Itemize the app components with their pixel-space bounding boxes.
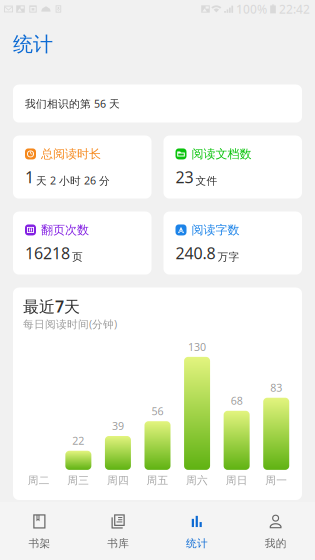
staticText: 56	[151, 404, 163, 418]
button[interactable]: 统计	[157, 502, 236, 560]
staticText: 翻页次数	[41, 223, 89, 237]
staticText: 我的	[265, 537, 287, 550]
staticText: 阅读文档数	[191, 147, 251, 161]
staticText: 23	[175, 166, 193, 187]
staticText: 16218	[25, 242, 70, 263]
staticText: 周三	[67, 474, 89, 487]
button[interactable]: 我的	[236, 502, 315, 560]
staticText: 阅读字数	[191, 223, 239, 237]
staticText: 130	[188, 340, 206, 354]
staticText: 周五	[146, 474, 168, 487]
staticText: 天 2 小时 26 分	[36, 173, 110, 188]
staticText: 我们相识的第 56 天	[25, 96, 120, 111]
staticText: 书库	[107, 537, 129, 550]
staticText: 周二	[28, 474, 50, 487]
staticText: 最近7天	[23, 296, 80, 317]
staticText: 22	[72, 434, 84, 448]
staticText: 万字	[217, 250, 239, 264]
staticText: 每日阅读时间(分钟)	[23, 317, 117, 331]
staticText: 39	[112, 419, 124, 433]
staticText: 书架	[28, 537, 50, 550]
staticText: 周日	[226, 474, 248, 487]
staticText: 1	[25, 166, 34, 187]
staticText: 统计	[186, 537, 208, 550]
staticText: 页	[72, 250, 83, 264]
button[interactable]: 书架	[0, 502, 79, 560]
button[interactable]: 书库	[79, 502, 158, 560]
staticText: 83	[270, 381, 282, 395]
staticText: 周四	[107, 474, 129, 487]
staticText: 周一	[265, 474, 287, 487]
staticText: 总阅读时长	[41, 147, 101, 161]
staticText: 68	[231, 394, 243, 408]
staticText: 统计	[13, 32, 53, 57]
staticText: 文件	[195, 174, 217, 188]
staticText: 240.8	[175, 242, 215, 263]
staticText: 周六	[186, 474, 208, 487]
staticText: 100%	[236, 1, 267, 17]
staticText: 22:42	[279, 1, 310, 17]
